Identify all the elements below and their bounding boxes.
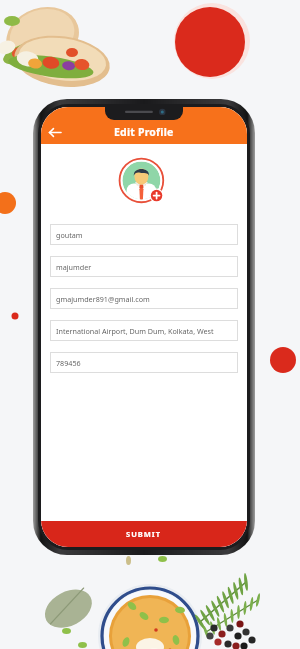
staticText: Edit Profile xyxy=(114,125,174,139)
staticText: International Airport, Dum Dum, Kolkata,… xyxy=(56,326,232,336)
button[interactable]: gmajumder891@gmail.com xyxy=(50,288,238,309)
button[interactable]: International Airport, Dum Dum, Kolkata,… xyxy=(50,320,238,341)
button[interactable]: goutam xyxy=(50,224,238,245)
staticText: SUBMIT xyxy=(126,529,162,539)
staticText: gmajumder891@gmail.com xyxy=(56,294,150,304)
staticText: 789456 xyxy=(56,358,81,368)
button[interactable]: Change profile photo xyxy=(118,157,170,209)
button[interactable]: 789456 xyxy=(50,352,238,373)
button[interactable]: Back xyxy=(41,119,67,145)
staticText: majumder xyxy=(56,262,92,272)
button[interactable]: majumder xyxy=(50,256,238,277)
button[interactable]: SUBMIT xyxy=(41,521,247,547)
staticText: goutam xyxy=(56,230,83,240)
